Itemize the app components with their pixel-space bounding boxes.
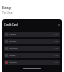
staticText: To Use xyxy=(2,10,13,15)
button[interactable]: Netflix xyxy=(4,32,60,37)
staticText: 14.99 xyxy=(53,47,59,50)
button[interactable]: Amazon xyxy=(4,46,60,51)
staticText: 8.49 xyxy=(54,61,59,64)
staticText: 12.99 xyxy=(53,33,59,36)
staticText: Spotify xyxy=(9,40,17,43)
staticText: Easy xyxy=(2,5,11,10)
staticText: Netflix xyxy=(9,33,17,36)
button[interactable]: Google xyxy=(4,60,60,65)
staticText: Apple xyxy=(9,54,16,57)
staticText: Credit Card xyxy=(4,23,18,27)
staticText: 4.99 xyxy=(54,54,59,57)
button[interactable]: Apple xyxy=(4,53,60,58)
button[interactable]: Spotify xyxy=(4,39,60,44)
staticText: Amazon xyxy=(9,47,18,50)
staticText: 9.99 xyxy=(54,40,59,43)
staticText: Google xyxy=(9,61,17,64)
